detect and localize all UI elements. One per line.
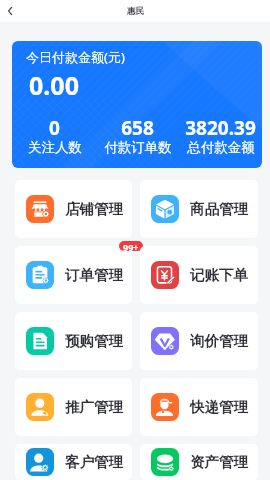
- button[interactable]: 0: [13, 115, 96, 158]
- button[interactable]: 询价管理: [140, 312, 258, 370]
- staticText: 推广管理: [65, 398, 123, 416]
- staticText: 预购管理: [65, 332, 123, 350]
- button[interactable]: 快递管理: [140, 378, 258, 436]
- button[interactable]: 订单管理: [15, 246, 132, 304]
- button[interactable]: 资产管理: [140, 444, 258, 480]
- staticText: 0: [49, 115, 60, 141]
- staticText: 商品管理: [190, 200, 248, 218]
- staticText: 99+: [123, 241, 139, 251]
- staticText: 关注人数: [28, 139, 82, 156]
- staticText: 记账下单: [190, 266, 248, 284]
- button[interactable]: 店铺管理: [15, 180, 132, 238]
- staticText: 询价管理: [190, 332, 248, 350]
- staticText: 惠民: [127, 6, 144, 17]
- staticText: 订单管理: [65, 266, 123, 284]
- button[interactable]: 预购管理: [15, 312, 132, 370]
- staticText: 付款订单数: [104, 139, 172, 156]
- button[interactable]: 推广管理: [15, 378, 132, 436]
- staticText: 店铺管理: [65, 200, 123, 218]
- staticText: 今日付款金额(元): [26, 48, 125, 66]
- button[interactable]: 客户管理: [15, 444, 132, 480]
- button[interactable]: 658: [96, 115, 179, 158]
- staticText: 0.00: [29, 68, 79, 102]
- staticText: 客户管理: [65, 453, 123, 471]
- staticText: 快递管理: [190, 398, 248, 416]
- button[interactable]: Back: [0, 0, 20, 22]
- staticText: 资产管理: [190, 453, 248, 471]
- staticText: 总付款金额: [187, 139, 255, 156]
- button[interactable]: 商品管理: [140, 180, 258, 238]
- staticText: 3820.39: [185, 115, 256, 141]
- staticText: 658: [121, 115, 154, 141]
- button[interactable]: 3820.39: [179, 115, 262, 158]
- button[interactable]: 今日付款金额(元): [12, 41, 262, 168]
- button[interactable]: 记账下单: [140, 246, 258, 304]
